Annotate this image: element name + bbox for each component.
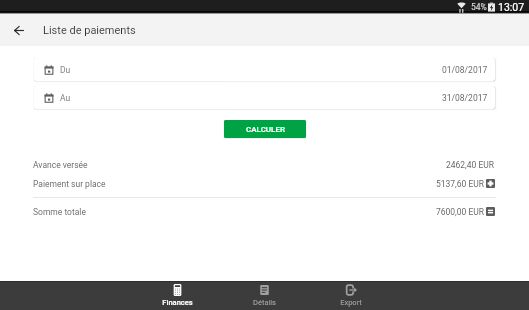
staticText: 01/08/2017 <box>442 65 488 75</box>
staticText: Au <box>60 93 71 103</box>
button[interactable]: Détails <box>236 281 292 310</box>
button[interactable]: Back <box>9 20 29 40</box>
staticText: 5137,60 EUR <box>436 179 485 189</box>
button[interactable]: Paiement sur place <box>0 174 529 193</box>
button[interactable]: CALCULER <box>224 120 306 138</box>
button[interactable]: Du <box>34 58 495 81</box>
staticText: Liste de paiements <box>43 24 136 37</box>
staticText: Du <box>60 65 71 75</box>
staticText: Avance versée <box>33 160 88 170</box>
staticText: Finances <box>162 298 193 307</box>
button[interactable]: Avance versée <box>0 155 529 174</box>
staticText: 7600,00 EUR <box>436 207 485 217</box>
staticText: Détails <box>253 298 276 307</box>
staticText: 13:07 <box>498 1 525 13</box>
button[interactable]: Export <box>323 281 379 310</box>
staticText: Paiement sur place <box>33 179 106 189</box>
staticText: 31/08/2017 <box>442 93 488 103</box>
button[interactable]: Finances <box>149 281 205 310</box>
button[interactable]: Somme totale <box>0 202 529 221</box>
staticText: 54% <box>471 2 487 12</box>
staticText: Somme totale <box>33 207 86 217</box>
staticText: CALCULER <box>246 125 285 134</box>
staticText: 2462,40 EUR <box>446 160 495 170</box>
staticText: Export <box>340 298 362 307</box>
button[interactable]: Au <box>34 86 495 109</box>
